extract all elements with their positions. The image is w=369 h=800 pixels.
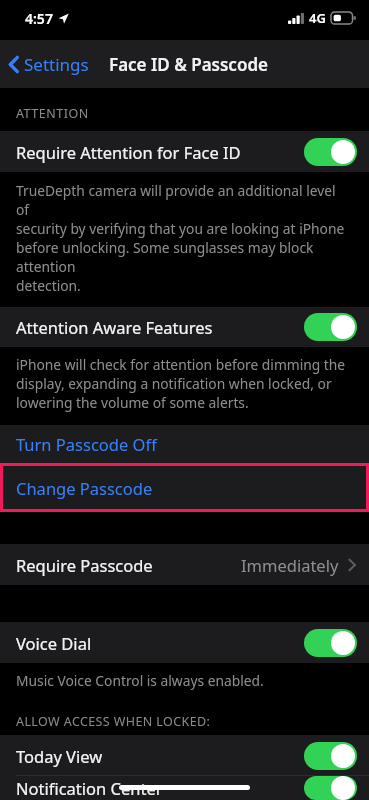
staticText: ATTENTION (16, 105, 89, 122)
button[interactable]: Require Attention for Face ID (0, 131, 369, 172)
button[interactable]: Toggle, on (304, 313, 357, 341)
staticText: Voice Dial (16, 632, 92, 654)
staticText: iPhone will check for attention before d… (16, 355, 349, 412)
staticText: Change Passcode (16, 477, 153, 499)
button[interactable]: Toggle, on (304, 629, 357, 657)
staticText: 4G (309, 9, 326, 27)
staticText: Require Passcode (16, 554, 153, 576)
staticText: Settings (24, 53, 89, 76)
staticText: Attention Aware Features (16, 316, 213, 338)
button[interactable]: Settings (0, 45, 99, 84)
staticText: Immediately (241, 554, 339, 576)
button[interactable]: Toggle, on (304, 776, 357, 800)
button[interactable]: Today View (0, 735, 369, 776)
button[interactable]: Toggle, on (304, 138, 357, 166)
staticText: Face ID & Passcode (109, 53, 268, 76)
button[interactable]: Require Passcode (0, 544, 369, 585)
button[interactable]: Notification Center (0, 776, 369, 800)
staticText: Today View (16, 745, 103, 767)
button[interactable]: Turn Passcode Off (0, 425, 369, 463)
staticText: Music Voice Control is always enabled. (16, 671, 349, 690)
button[interactable]: Toggle, on (304, 742, 357, 770)
staticText: ALLOW ACCESS WHEN LOCKED: (16, 713, 211, 730)
staticText: Turn Passcode Off (16, 433, 157, 455)
button[interactable]: Change Passcode (0, 463, 369, 512)
staticText: Notification Center (16, 777, 163, 799)
button[interactable]: Voice Dial (0, 622, 369, 663)
staticText: Require Attention for Face ID (16, 141, 241, 163)
button[interactable]: Attention Aware Features (0, 307, 369, 347)
staticText: TrueDepth camera will provide an additio… (16, 181, 349, 295)
staticText: 4:57 (25, 9, 53, 28)
